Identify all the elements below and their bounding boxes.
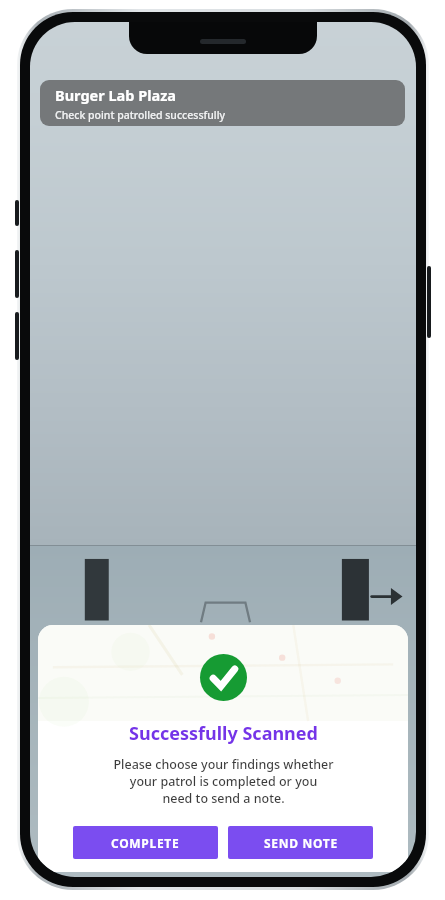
button[interactable]: Burger Lab Plaza xyxy=(40,80,405,126)
button[interactable]: COMPLETE xyxy=(73,826,218,859)
staticText: Please choose your findings whether your… xyxy=(113,756,334,807)
staticText: SEND NOTE xyxy=(264,835,338,851)
button[interactable]: SEND NOTE xyxy=(228,826,373,859)
staticText: COMPLETE xyxy=(111,835,180,851)
staticText: Burger Lab Plaza xyxy=(55,85,177,105)
staticText: Successfully Scanned xyxy=(129,721,318,746)
staticText: Check point patrolled successfully xyxy=(55,108,226,122)
